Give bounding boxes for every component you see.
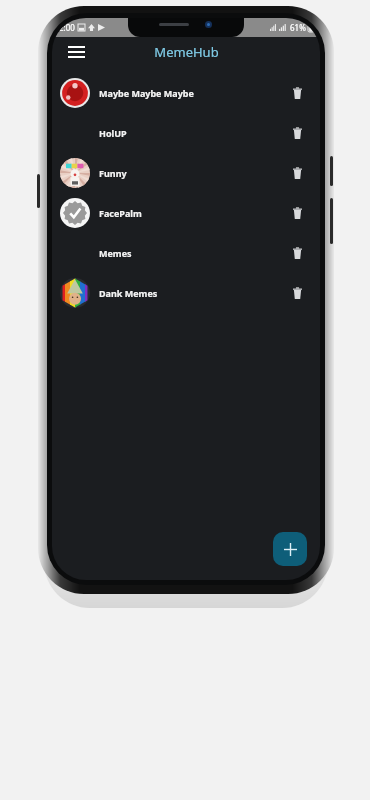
button[interactable]: Funny	[52, 153, 320, 193]
button[interactable]: Dank Memes	[52, 273, 320, 313]
staticText: 2:00	[59, 22, 75, 33]
staticText: Memes	[99, 247, 286, 259]
button[interactable]: Delete Memes	[286, 242, 308, 264]
button[interactable]: Add new	[273, 532, 307, 566]
button[interactable]: Delete HolUP	[286, 122, 308, 144]
button[interactable]: FacePalm	[52, 193, 320, 233]
button[interactable]: Delete Dank Memes	[286, 282, 308, 304]
button[interactable]: Open navigation menu	[62, 38, 90, 66]
staticText: Funny	[99, 167, 286, 179]
staticText: HolUP	[99, 127, 286, 139]
staticText: MemeHub	[154, 43, 219, 61]
button[interactable]: Delete FacePalm	[286, 202, 308, 224]
button[interactable]: Memes	[52, 233, 320, 273]
staticText: FacePalm	[99, 207, 286, 219]
button[interactable]: Delete Maybe Maybe Maybe	[286, 82, 308, 104]
staticText: Maybe Maybe Maybe	[99, 87, 286, 99]
staticText: Dank Memes	[99, 287, 286, 299]
button[interactable]: Maybe Maybe Maybe	[52, 73, 320, 113]
button[interactable]: Delete Funny	[286, 162, 308, 184]
staticText: 61%	[290, 22, 306, 33]
button[interactable]: HolUP	[52, 113, 320, 153]
